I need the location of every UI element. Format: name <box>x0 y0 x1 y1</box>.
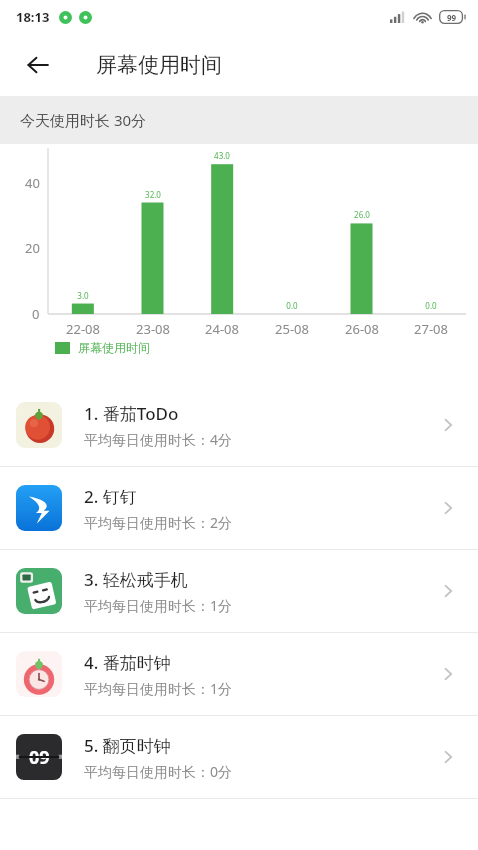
staticText: 0.0 <box>425 300 437 311</box>
staticText: 24-08 <box>205 320 239 338</box>
staticText: 4. 番茄时钟 <box>84 651 171 674</box>
staticText: 3.0 <box>77 290 89 301</box>
button[interactable]: 4. 番茄时钟 <box>0 633 478 715</box>
staticText: 0 <box>32 305 40 323</box>
staticText: 20 <box>25 239 40 257</box>
staticText: 43.0 <box>214 150 230 161</box>
staticText: 99 <box>447 12 457 23</box>
staticText: 平均每日使用时长：1分 <box>84 679 233 698</box>
staticText: 3. 轻松戒手机 <box>84 568 188 591</box>
button[interactable]: 1. 番茄ToDo <box>0 384 478 466</box>
button[interactable]: 09 <box>0 716 478 798</box>
staticText: 0.0 <box>286 300 298 311</box>
staticText: 26.0 <box>354 209 370 220</box>
staticText: 26-08 <box>345 320 379 338</box>
staticText: 27-08 <box>414 320 448 338</box>
staticText: 平均每日使用时长：0分 <box>84 762 233 781</box>
button[interactable]: 2. 钉钉 <box>0 467 478 549</box>
button[interactable]: Back <box>16 43 60 87</box>
staticText: 今天使用时长 30分 <box>20 110 147 130</box>
staticText: 2. 钉钉 <box>84 485 137 508</box>
staticText: 平均每日使用时长：4分 <box>84 430 233 449</box>
staticText: 32.0 <box>145 189 161 200</box>
staticText: 1. 番茄ToDo <box>84 402 179 425</box>
staticText: 40 <box>25 174 40 192</box>
staticText: 22-08 <box>66 320 100 338</box>
staticText: 18:13 <box>16 8 50 26</box>
staticText: 屏幕使用时间 <box>78 340 150 355</box>
staticText: 5. 翻页时钟 <box>84 734 171 757</box>
staticText: 25-08 <box>275 320 309 338</box>
button[interactable]: 3. 轻松戒手机 <box>0 550 478 632</box>
staticText: 23-08 <box>136 320 170 338</box>
staticText: 屏幕使用时间 <box>96 52 222 78</box>
staticText: 09 <box>29 745 50 770</box>
staticText: 平均每日使用时长：2分 <box>84 513 233 532</box>
staticText: 平均每日使用时长：1分 <box>84 596 233 615</box>
